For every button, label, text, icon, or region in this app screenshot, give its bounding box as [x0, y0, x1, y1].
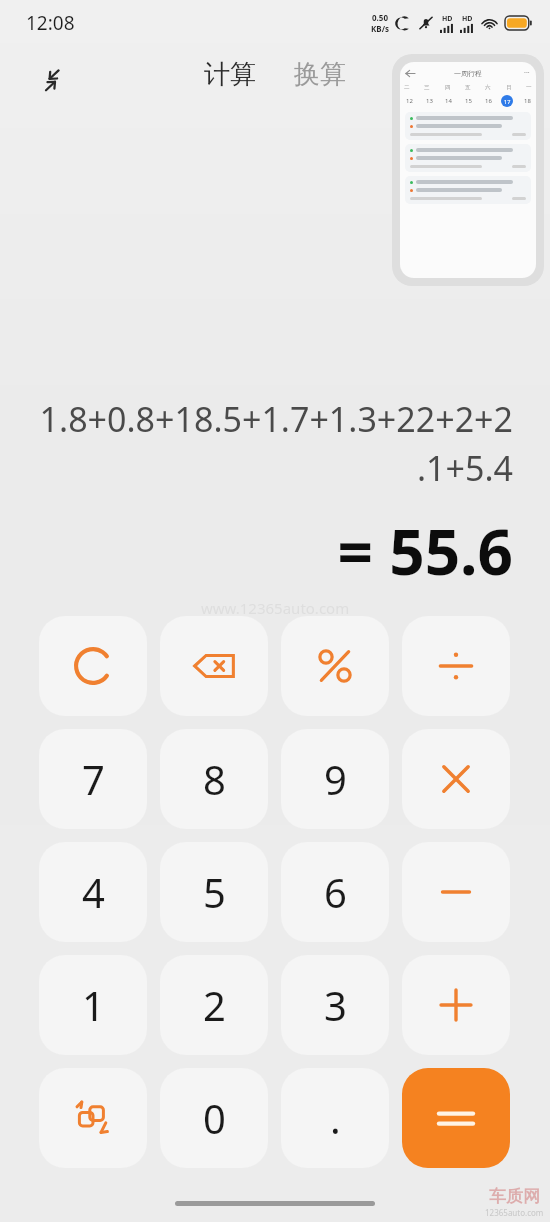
staticText: 四: [445, 84, 451, 91]
staticText: 6: [324, 865, 347, 919]
staticText: 1.8+0.8+18.5+1.7+1.3+22+2+2.1+5.4: [36, 396, 513, 491]
staticText: 2: [203, 978, 226, 1032]
staticText: 二: [404, 84, 410, 91]
staticText: 三: [424, 84, 430, 91]
staticText: 17: [504, 98, 511, 105]
button[interactable]: 7: [39, 729, 147, 829]
staticText: ···: [524, 68, 530, 78]
button[interactable]: 3: [281, 955, 389, 1055]
staticText: www.12365auto.com: [201, 598, 350, 618]
button[interactable]: 9: [281, 729, 389, 829]
button[interactable]: Backspace: [160, 616, 268, 716]
button[interactable]: 6: [281, 842, 389, 942]
staticText: 计算: [204, 58, 256, 91]
button[interactable]: [39, 616, 147, 716]
button[interactable]: Unit conversion: [39, 1068, 147, 1168]
button[interactable]: 2: [160, 955, 268, 1055]
staticText: 5: [203, 865, 226, 919]
staticText: 一: [526, 84, 532, 91]
button[interactable]: 4: [39, 842, 147, 942]
staticText: 16: [485, 97, 492, 105]
staticText: 车质网: [489, 1186, 540, 1207]
staticText: 12: [406, 97, 413, 105]
staticText: 五: [465, 84, 471, 91]
staticText: = 55.6: [36, 509, 513, 593]
staticText: HD: [442, 14, 453, 24]
button[interactable]: 0: [160, 1068, 268, 1168]
staticText: 12365auto.com: [485, 1207, 544, 1218]
staticText: 8: [203, 752, 226, 806]
button[interactable]: 一周行程: [392, 54, 544, 286]
staticText: 一周行程: [454, 69, 482, 78]
staticText: 13: [426, 97, 433, 105]
staticText: 日: [506, 84, 512, 91]
button[interactable]: Plus: [402, 955, 510, 1055]
button[interactable]: 5: [160, 842, 268, 942]
staticText: 18: [524, 97, 531, 105]
staticText: 15: [465, 97, 472, 105]
button[interactable]: 换算: [288, 54, 352, 95]
staticText: 4: [82, 865, 105, 919]
staticText: 14: [445, 97, 452, 105]
staticText: 0.50: [372, 12, 388, 23]
button[interactable]: 计算: [198, 54, 262, 95]
staticText: 12:08: [26, 10, 75, 36]
staticText: 1: [82, 978, 105, 1032]
button[interactable]: [281, 616, 389, 716]
button[interactable]: Equals: [402, 1068, 510, 1168]
button[interactable]: .: [281, 1068, 389, 1168]
staticText: 3: [324, 978, 347, 1032]
button[interactable]: Minus: [402, 842, 510, 942]
staticText: 7: [82, 752, 105, 806]
button[interactable]: 1: [39, 955, 147, 1055]
staticText: HD: [462, 14, 473, 24]
staticText: 9: [324, 752, 347, 806]
staticText: .: [330, 1091, 341, 1145]
button[interactable]: 8: [160, 729, 268, 829]
button[interactable]: Divide: [402, 616, 510, 716]
staticText: 六: [485, 84, 491, 91]
staticText: 0: [203, 1091, 226, 1145]
button[interactable]: Multiply: [402, 729, 510, 829]
staticText: KB/s: [371, 23, 389, 34]
staticText: 换算: [294, 58, 346, 91]
button[interactable]: Collapse: [28, 56, 76, 104]
